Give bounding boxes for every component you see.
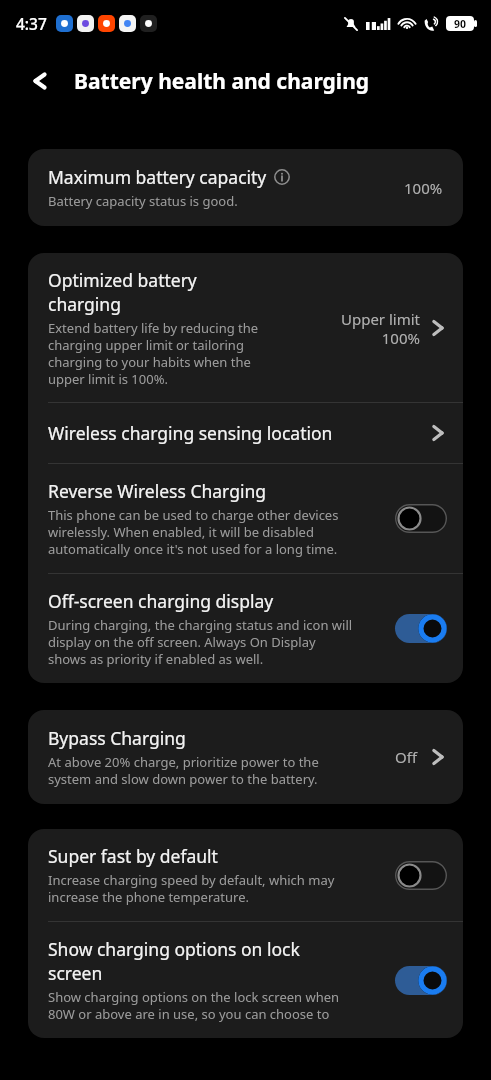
other: Open	[425, 420, 451, 446]
button[interactable]: Wireless charging sensing location	[28, 403, 463, 463]
button[interactable]: Off	[395, 861, 447, 890]
staticText: Super fast by default	[48, 844, 218, 868]
button[interactable]: Reverse Wireless Charging	[28, 464, 463, 573]
button[interactable]: Back	[20, 61, 60, 101]
staticText: Maximum battery capacity	[48, 165, 267, 189]
staticText: Upper limit 100%	[340, 309, 420, 348]
staticText: Show charging options on lock screen	[48, 937, 300, 985]
button[interactable]: Show charging options on lock screen	[28, 922, 463, 1038]
staticText: Bypass Charging	[48, 726, 186, 750]
staticText: This phone can be used to charge other d…	[48, 506, 339, 558]
staticText: 4:37	[16, 13, 47, 34]
staticText: Optimized battery charging	[48, 268, 197, 316]
button[interactable]: Off-screen charging display	[28, 574, 463, 683]
staticText: Off	[395, 747, 418, 767]
staticText: Off-screen charging display	[48, 589, 274, 613]
staticText: 100%	[404, 178, 443, 198]
button[interactable]: Off	[395, 504, 447, 533]
staticText: Reverse Wireless Charging	[48, 479, 267, 503]
button[interactable]: On	[395, 966, 447, 995]
staticText: Wireless charging sensing location	[48, 421, 425, 445]
other: Open	[425, 744, 451, 770]
button[interactable]: Optimized battery charging	[28, 253, 463, 402]
staticText: Increase charging speed by default, whic…	[48, 871, 335, 906]
staticText: Battery capacity status is good.	[48, 192, 238, 210]
button[interactable]: On	[395, 614, 447, 643]
staticText: Show charging options on the lock screen…	[48, 988, 340, 1023]
other: Open	[425, 315, 451, 341]
staticText: Extend battery life by reducing the char…	[48, 319, 259, 388]
button[interactable]: Bypass Charging	[28, 710, 463, 804]
staticText: 90	[454, 17, 467, 31]
button[interactable]: Super fast by default	[28, 829, 463, 921]
staticText: During charging, the charging status and…	[48, 616, 353, 668]
button[interactable]: Maximum battery capacity	[28, 149, 463, 226]
staticText: At above 20% charge, prioritize power to…	[48, 753, 319, 788]
staticText: Battery health and charging	[74, 67, 370, 96]
